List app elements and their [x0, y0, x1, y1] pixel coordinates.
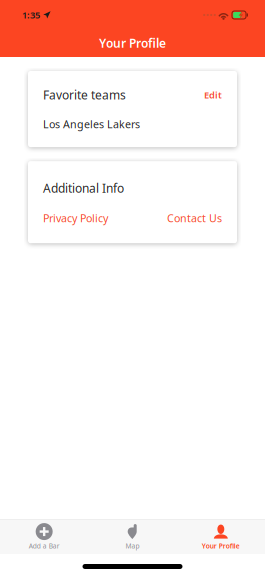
- staticText: Contact Us: [167, 211, 222, 225]
- staticText: Privacy Policy: [43, 211, 108, 225]
- button[interactable]: Add a Bar: [0, 518, 88, 556]
- staticText: 1:35: [22, 9, 40, 21]
- staticText: Your Profile: [202, 542, 240, 550]
- staticText: Additional Info: [43, 180, 124, 196]
- staticText: Favorite teams: [43, 87, 126, 103]
- button[interactable]: Map: [88, 518, 177, 556]
- staticText: Your Profile: [99, 35, 166, 51]
- button[interactable]: Your Profile: [177, 518, 265, 556]
- button[interactable]: Contact Us: [167, 211, 222, 225]
- staticText: Map: [125, 542, 139, 550]
- button[interactable]: Privacy Policy: [43, 211, 108, 225]
- staticText: Los Angeles Lakers: [43, 117, 140, 131]
- staticText: Edit: [204, 89, 222, 101]
- button[interactable]: Edit: [204, 89, 222, 101]
- staticText: Add a Bar: [29, 542, 60, 550]
